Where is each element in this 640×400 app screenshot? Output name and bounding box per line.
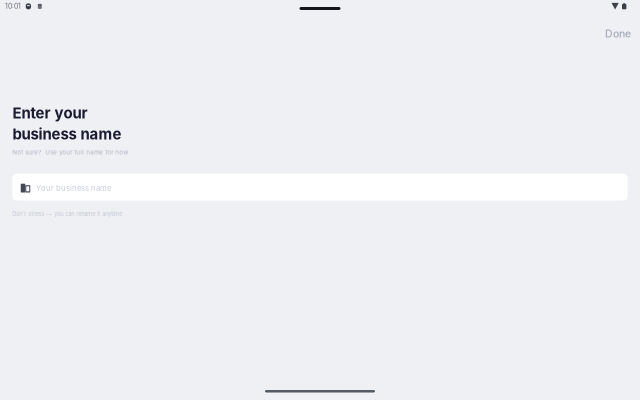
- staticText: Not sure? Use your full name for now: [12, 148, 128, 156]
- button[interactable]: Done: [599, 22, 637, 45]
- staticText: Don't stress — you can rename it anytime: [12, 210, 122, 217]
- button[interactable]: Your business name: [12, 174, 628, 201]
- staticText: 10:01: [5, 2, 21, 10]
- staticText: Done: [605, 27, 631, 40]
- staticText: Enter your business name: [13, 104, 122, 143]
- staticText: Your business name: [36, 183, 111, 193]
